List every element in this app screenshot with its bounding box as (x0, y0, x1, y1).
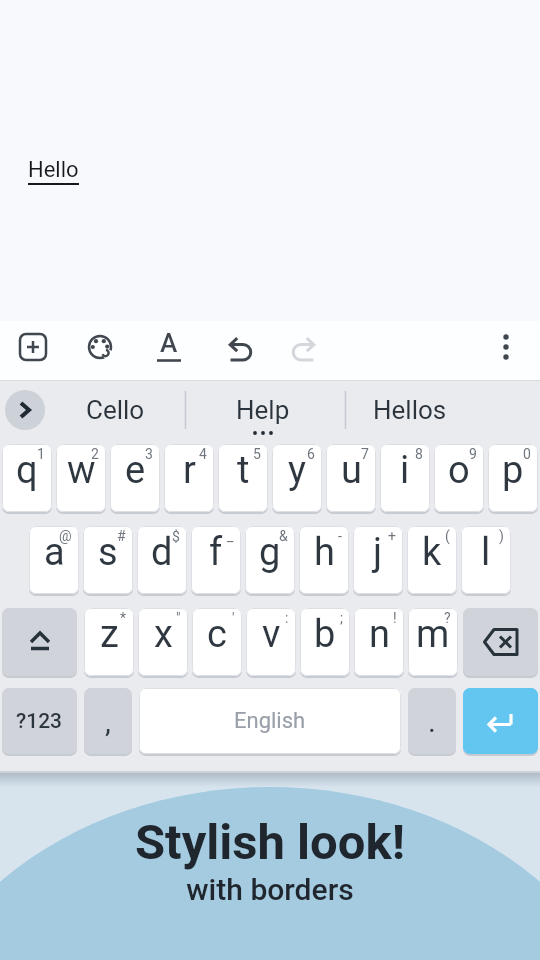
button[interactable] (85, 332, 115, 362)
button[interactable]: b (300, 608, 350, 676)
button[interactable]: k (407, 526, 457, 594)
button[interactable]: x (138, 608, 188, 676)
button[interactable]: A (155, 332, 183, 364)
button[interactable] (5, 390, 45, 430)
button[interactable] (290, 332, 322, 364)
button[interactable]: q (2, 444, 52, 512)
staticText: i (400, 448, 410, 493)
staticText: Hellos (373, 395, 447, 425)
button[interactable]: u (326, 444, 376, 512)
button[interactable]: w (56, 444, 106, 512)
button[interactable] (463, 608, 538, 676)
button[interactable]: l (461, 526, 511, 594)
staticText: - (338, 528, 342, 544)
staticText: & (279, 528, 288, 544)
staticText: 2 (91, 446, 99, 462)
button[interactable]: Help (195, 385, 330, 435)
staticText: v (262, 612, 281, 657)
staticText: ' (232, 610, 235, 626)
button[interactable]: z (84, 608, 134, 676)
button[interactable]: p (488, 444, 538, 512)
button[interactable]: Cello (55, 385, 175, 435)
button[interactable] (463, 688, 538, 754)
button[interactable]: r (164, 444, 214, 512)
button[interactable] (222, 332, 254, 364)
button[interactable]: j (353, 526, 403, 594)
staticText: + (388, 528, 396, 544)
button[interactable]: ?123 (2, 688, 77, 754)
staticText: 4 (199, 446, 207, 462)
staticText: y (288, 448, 306, 493)
staticText: 5 (253, 446, 261, 462)
staticText: m (416, 612, 450, 657)
button[interactable]: , (84, 688, 132, 754)
button[interactable]: s (83, 526, 133, 594)
staticText: u (341, 448, 362, 493)
staticText: k (422, 530, 442, 575)
staticText: * (120, 610, 127, 626)
staticText: . (428, 704, 436, 739)
button[interactable]: y (272, 444, 322, 512)
staticText: 8 (415, 446, 423, 462)
staticText: w (67, 448, 96, 493)
staticText: # (117, 528, 126, 544)
staticText: ; (340, 610, 343, 626)
staticText: ? (444, 610, 451, 626)
button[interactable] (494, 330, 518, 366)
button[interactable]: m (408, 608, 458, 676)
button[interactable]: o (434, 444, 484, 512)
staticText: h (314, 530, 335, 575)
staticText: x (154, 612, 173, 657)
button[interactable]: n (354, 608, 404, 676)
staticText: z (100, 612, 119, 657)
button[interactable]: c (192, 608, 242, 676)
staticText: f (209, 530, 223, 575)
staticText: q (16, 448, 38, 493)
button[interactable]: i (380, 444, 430, 512)
staticText: ( (445, 528, 450, 544)
button[interactable]: f (191, 526, 241, 594)
staticText: @ (59, 528, 72, 544)
staticText: r (183, 448, 196, 493)
staticText: g (259, 530, 281, 575)
staticText: Stylish look! (0, 814, 540, 871)
staticText: c (207, 612, 227, 657)
staticText: 3 (145, 446, 153, 462)
button[interactable]: v (246, 608, 296, 676)
button[interactable]: Hellos (350, 385, 470, 435)
button[interactable] (2, 608, 77, 676)
staticText: n (369, 612, 390, 657)
staticText: d (151, 530, 173, 575)
staticText: b (314, 612, 336, 657)
staticText: , (105, 704, 111, 739)
button[interactable] (18, 332, 48, 362)
staticText: with borders (0, 872, 540, 907)
staticText: ! (393, 610, 397, 626)
staticText: ?123 (16, 709, 63, 734)
staticText: o (448, 448, 470, 493)
staticText: t (237, 448, 250, 493)
button[interactable]: English (139, 688, 401, 754)
button[interactable]: t (218, 444, 268, 512)
staticText: Cello (86, 395, 145, 425)
button[interactable]: d (137, 526, 187, 594)
staticText: j (373, 530, 383, 575)
staticText: _ (227, 528, 234, 544)
staticText: English (234, 708, 306, 734)
button[interactable]: a (29, 526, 79, 594)
button[interactable]: g (245, 526, 295, 594)
staticText: Help (236, 395, 290, 425)
button[interactable]: . (408, 688, 456, 754)
staticText: : (285, 610, 289, 626)
button[interactable]: h (299, 526, 349, 594)
staticText: A (160, 328, 178, 358)
staticText: e (125, 448, 146, 493)
staticText: $ (172, 528, 180, 544)
button[interactable]: e (110, 444, 160, 512)
staticText: 0 (523, 446, 531, 462)
staticText: Hello (28, 157, 79, 183)
staticText: 1 (37, 446, 45, 462)
staticText: 6 (307, 446, 315, 462)
staticText: l (481, 530, 491, 575)
staticText: s (98, 530, 118, 575)
